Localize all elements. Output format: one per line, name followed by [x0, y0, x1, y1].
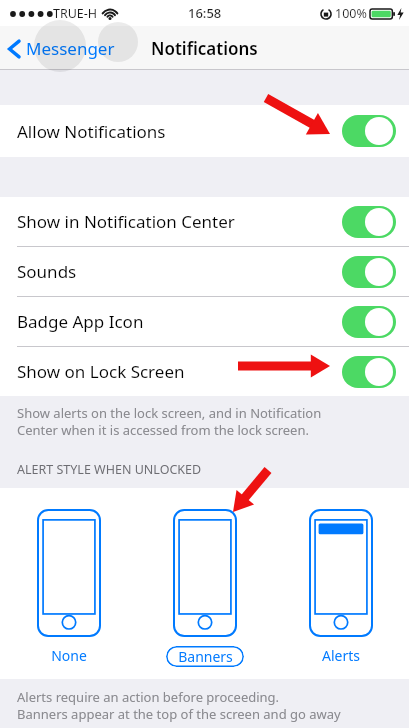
button[interactable]: None: [0, 509, 137, 666]
staticText: Alerts require an action before proceedi…: [17, 688, 341, 723]
staticText: Show on Lock Screen: [17, 360, 185, 383]
button[interactable]: Show in Notification Center: [0, 197, 409, 246]
staticText: Alerts: [322, 646, 360, 665]
button[interactable]: Toggle on: [342, 206, 396, 238]
staticText: Show in Notification Center: [17, 210, 235, 233]
staticText: None: [51, 646, 87, 665]
button[interactable]: Alerts: [273, 509, 409, 666]
button[interactable]: Toggle on: [342, 356, 396, 388]
staticText: Messenger: [26, 37, 115, 60]
staticText: Show alerts on the lock screen, and in N…: [17, 404, 322, 439]
button[interactable]: Toggle on: [342, 256, 396, 288]
button[interactable]: Show on Lock Screen: [0, 347, 409, 396]
button[interactable]: Sounds: [0, 247, 409, 296]
staticText: ALERT STYLE WHEN UNLOCKED: [17, 461, 202, 478]
staticText: Badge App Icon: [17, 310, 144, 333]
button[interactable]: Toggle on: [342, 306, 396, 338]
button[interactable]: Banners: [137, 509, 273, 668]
button[interactable]: Allow Notifications: [0, 105, 409, 157]
staticText: 16:58: [188, 4, 222, 22]
staticText: Banners: [178, 647, 233, 666]
button[interactable]: Toggle on: [342, 115, 396, 147]
staticText: TRUE-H: [53, 5, 98, 22]
staticText: Sounds: [17, 260, 77, 283]
button[interactable]: Messenger: [0, 33, 125, 64]
button[interactable]: Badge App Icon: [0, 297, 409, 346]
staticText: Allow Notifications: [17, 120, 166, 143]
staticText: 100%: [335, 5, 367, 22]
staticText: Notifications: [151, 37, 258, 60]
